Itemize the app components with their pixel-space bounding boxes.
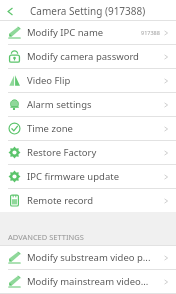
staticText: Restore Factory xyxy=(27,146,162,159)
staticText: Remote record xyxy=(27,194,162,207)
staticText: Modify substream video p... xyxy=(27,251,162,264)
staticText: Modify mainstream video... xyxy=(27,275,162,288)
button[interactable]: Modify IPC name xyxy=(0,21,176,44)
staticText: IPC firmware update xyxy=(27,170,162,183)
button[interactable]: Time zone xyxy=(0,117,176,140)
button[interactable]: Video Flip xyxy=(0,69,176,92)
button[interactable]: Alarm settings xyxy=(0,93,176,116)
staticText: Time zone xyxy=(27,122,162,135)
button[interactable]: Modify camera password xyxy=(0,45,176,68)
staticText: Camera Setting (917388) xyxy=(30,4,146,18)
button[interactable]: Restore Factory xyxy=(0,141,176,164)
staticText: ADVANCED SETTINGS xyxy=(8,232,84,242)
staticText: Video Flip xyxy=(27,74,162,87)
button[interactable]: Back xyxy=(0,1,20,21)
button[interactable]: IPC firmware update xyxy=(0,165,176,188)
staticText: Alarm settings xyxy=(27,98,162,111)
button[interactable]: Modify mainstream video... xyxy=(0,270,176,293)
staticText: 917388 xyxy=(141,29,160,36)
button[interactable]: Remote record xyxy=(0,189,176,212)
staticText: Modify camera password xyxy=(27,50,162,63)
staticText: Modify IPC name xyxy=(27,26,141,39)
button[interactable]: Modify substream video p... xyxy=(0,246,176,269)
